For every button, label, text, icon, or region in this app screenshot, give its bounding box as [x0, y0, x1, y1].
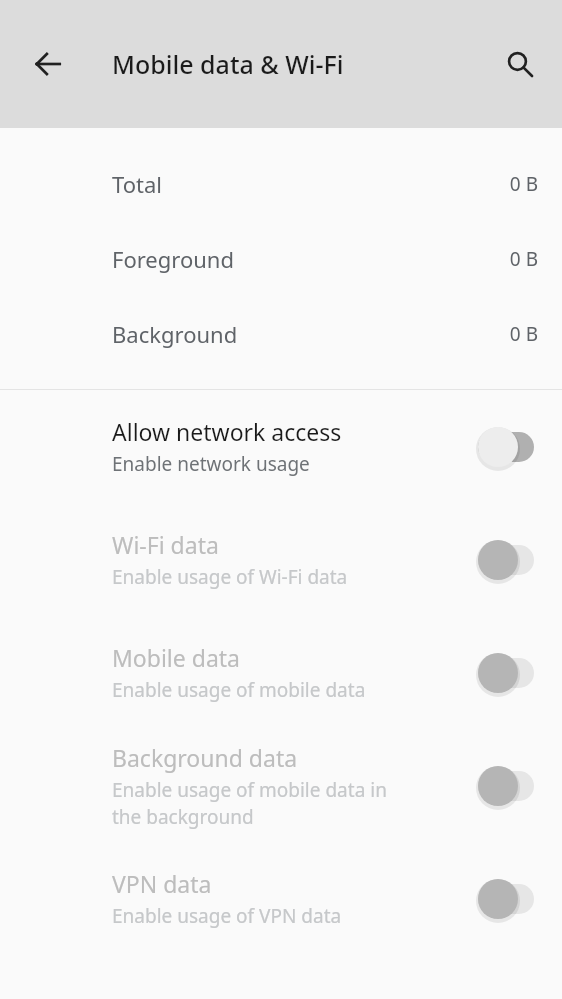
button[interactable]: VPN data: [0, 842, 562, 955]
button[interactable]: Toggle: [472, 649, 538, 697]
button[interactable]: Toggle: [472, 875, 538, 923]
staticText: Enable usage of mobile data: [112, 677, 366, 703]
staticText: Wi-Fi data: [112, 529, 219, 560]
button[interactable]: Background data: [0, 729, 562, 842]
button[interactable]: Foreground: [0, 221, 562, 296]
staticText: 0 B: [509, 321, 538, 347]
staticText: Foreground: [112, 244, 234, 274]
button[interactable]: Total: [0, 146, 562, 221]
staticText: VPN data: [112, 868, 212, 899]
button[interactable]: Background: [0, 296, 562, 371]
staticText: Total: [112, 169, 162, 199]
button[interactable]: Toggle: [472, 423, 538, 471]
button[interactable]: Toggle: [472, 536, 538, 584]
button[interactable]: Search: [492, 36, 548, 92]
staticText: Allow network access: [112, 416, 342, 447]
staticText: Enable network usage: [112, 451, 310, 477]
staticText: Background: [112, 319, 238, 349]
button[interactable]: Allow network access: [0, 390, 562, 503]
staticText: Mobile data: [112, 642, 240, 673]
button[interactable]: Toggle: [472, 762, 538, 810]
staticText: Mobile data & Wi-Fi: [112, 47, 344, 81]
staticText: Enable usage of VPN data: [112, 903, 342, 929]
staticText: Enable usage of Wi-Fi data: [112, 564, 348, 590]
staticText: 0 B: [509, 246, 538, 272]
button[interactable]: Back: [20, 36, 76, 92]
button[interactable]: Mobile data: [0, 616, 562, 729]
staticText: Enable usage of mobile data in the backg…: [112, 777, 387, 830]
staticText: Background data: [112, 742, 298, 773]
button[interactable]: Wi-Fi data: [0, 503, 562, 616]
staticText: 0 B: [509, 171, 538, 197]
